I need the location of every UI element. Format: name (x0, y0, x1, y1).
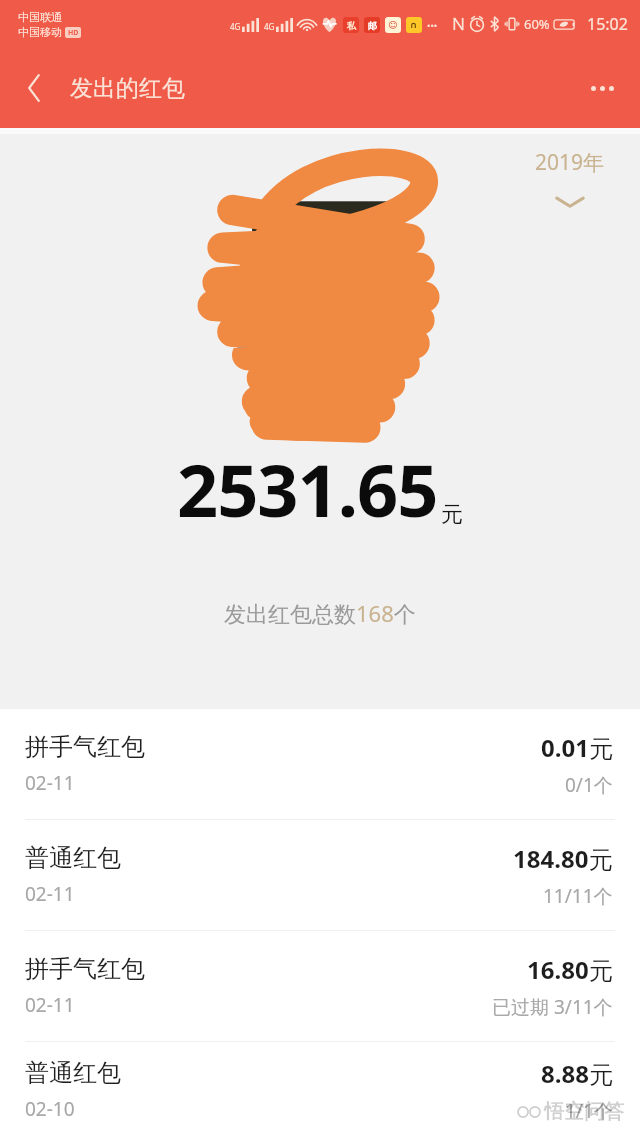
staticText: HD (68, 28, 79, 38)
staticText: 已过期 3/11个 (492, 994, 613, 1020)
staticText: 4G (264, 21, 275, 32)
staticText: 拼手气红包 (25, 732, 145, 762)
staticText: 02-11 (25, 881, 75, 907)
staticText: 1/1个 (565, 1098, 613, 1124)
staticText: 普通红包 (25, 1058, 121, 1088)
staticText: 发出的红包 (70, 74, 185, 103)
staticText: 私 (347, 20, 356, 31)
staticText: 拼手气红包 (25, 954, 145, 984)
staticText: 0.01元 (541, 731, 613, 764)
staticText: 2019年 (535, 148, 605, 177)
staticText: 邮 (368, 20, 377, 31)
staticText: 悟空问答 (544, 1099, 624, 1124)
staticText: ☺ (388, 20, 398, 30)
staticText: 8.88元 (541, 1057, 613, 1090)
staticText: 发出红包总数168个 (224, 598, 416, 628)
staticText: 60% (524, 15, 550, 33)
staticText: 11/11个 (543, 883, 613, 909)
button[interactable]: 拼手气红包 (0, 931, 640, 1042)
staticText: 元 (441, 501, 463, 529)
staticText: 中国联通 (18, 10, 62, 24)
staticText: 15:02 (587, 13, 628, 35)
staticText: 4G (230, 21, 241, 32)
button[interactable]: 拼手气红包 (0, 709, 640, 820)
button[interactable]: 返回 (8, 62, 60, 114)
staticText: 16.80元 (527, 953, 613, 986)
staticText: 02-11 (25, 770, 75, 796)
staticText: 02-10 (25, 1096, 75, 1122)
button[interactable]: 2019年 (535, 148, 605, 209)
staticText: 2531.65 (177, 440, 438, 538)
staticText: 中国移动 (18, 25, 62, 39)
staticText: 184.80元 (513, 842, 613, 875)
button[interactable]: 更多 (574, 60, 630, 116)
staticText: ••• (427, 19, 438, 31)
button[interactable]: 普通红包 (0, 820, 640, 931)
button[interactable]: 普通红包 (0, 1042, 640, 1138)
staticText: 普通红包 (25, 843, 121, 873)
staticText: 0/1个 (565, 772, 613, 798)
staticText: ∩ (410, 20, 418, 30)
staticText: 02-11 (25, 992, 75, 1018)
